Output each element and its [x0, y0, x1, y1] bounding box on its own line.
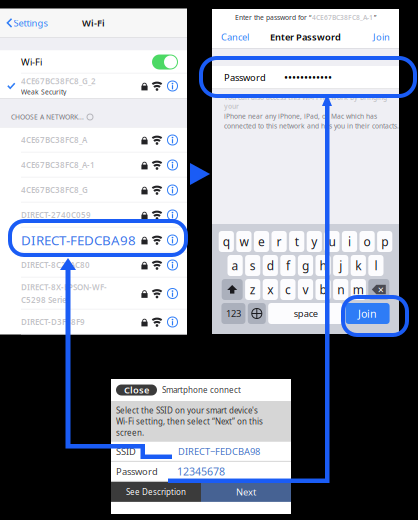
staticText: screen.	[116, 427, 144, 438]
staticText: Enter the password for “	[235, 13, 311, 22]
staticText: connected to this network and has you in…	[224, 122, 399, 130]
button[interactable]: b	[315, 279, 331, 300]
button[interactable]: Wi-Fi on	[152, 54, 178, 69]
staticText: 4CE67BC38FC8_G	[21, 185, 88, 195]
staticText: iPhone near any iPhone, iPad, or Mac whi…	[224, 112, 377, 121]
staticText: Wi-Fi	[82, 17, 105, 29]
button[interactable]: s	[245, 255, 260, 276]
button[interactable]: Join	[346, 303, 390, 324]
staticText: ”	[374, 13, 376, 22]
staticText: See Description	[126, 487, 186, 497]
staticText: c	[285, 281, 291, 297]
staticText: Join	[373, 31, 390, 43]
staticText: z	[250, 281, 256, 297]
button[interactable]: Settings	[0, 8, 47, 37]
staticText: CHOOSE A NETWORK...	[11, 113, 84, 121]
button[interactable]: DIRECT-2740C059	[0, 202, 187, 227]
button[interactable]: i	[342, 231, 357, 252]
staticText: Password	[224, 71, 266, 84]
staticText: Weak Security	[21, 87, 66, 96]
staticText: Password	[116, 465, 158, 478]
staticText: ••••••••••••	[284, 70, 332, 85]
staticText: l	[374, 257, 377, 273]
button[interactable]: h	[315, 255, 331, 276]
button[interactable]: a	[227, 255, 243, 276]
staticText: 4CE67BC38FC8_A-1	[312, 13, 373, 22]
staticText: You can also access this Wi-Fi network b…	[224, 93, 387, 111]
staticText: C5298 Serie	[21, 294, 67, 305]
button[interactable]: DIRECT-8X-EPSON-WF-	[0, 277, 187, 309]
button[interactable]: j	[333, 255, 348, 276]
staticText: Join	[358, 306, 377, 321]
button[interactable]: d	[263, 255, 278, 276]
button[interactable]: k	[351, 255, 366, 276]
staticText: DIRECT-FEDCBA98	[21, 231, 136, 249]
button[interactable]: e	[254, 231, 269, 252]
button[interactable]: Switch keyboard	[248, 303, 266, 324]
staticText: ×	[378, 282, 384, 297]
staticText: h	[320, 257, 327, 273]
staticText: a	[232, 257, 239, 273]
staticText: 4CE67BC38FC8_A	[21, 135, 87, 145]
staticText: t	[295, 233, 299, 249]
staticText: DIRECT-8C2FAC80	[21, 260, 90, 270]
staticText: d	[267, 257, 274, 273]
button[interactable]: u	[324, 231, 339, 252]
button[interactable]: c	[280, 279, 295, 300]
staticText: DIRECT-D3F38F9	[21, 317, 85, 327]
staticText: Wi-Fi setting, then select “Next” on thi…	[116, 416, 263, 427]
staticText: Next	[236, 486, 256, 498]
button[interactable]: 4CE67BC38FC8_G_2	[0, 73, 187, 98]
button[interactable]: o	[359, 231, 375, 252]
button[interactable]: See Description	[111, 482, 201, 502]
button[interactable]: m	[351, 279, 366, 300]
button[interactable]: l	[368, 255, 383, 276]
button[interactable]: space	[268, 303, 343, 324]
button[interactable]: z	[245, 279, 260, 300]
button[interactable]: 4CE67BC38FC8_G	[0, 177, 187, 202]
button[interactable]: 123	[221, 303, 245, 324]
staticText: x	[267, 281, 273, 297]
staticText: SSID	[116, 445, 136, 458]
staticText: Wi-Fi	[21, 56, 42, 68]
staticText: Close	[124, 384, 149, 396]
button[interactable]: p	[377, 231, 392, 252]
staticText: n	[337, 281, 344, 297]
staticText: Smartphone connect	[162, 385, 241, 395]
button[interactable]: t	[289, 231, 304, 252]
button[interactable]: g	[298, 255, 313, 276]
button[interactable]: q	[219, 231, 234, 252]
staticText: i	[348, 233, 351, 249]
staticText: e	[258, 233, 265, 249]
button[interactable]: y	[307, 231, 322, 252]
staticText: k	[355, 257, 361, 273]
button[interactable]: x	[263, 279, 278, 300]
button[interactable]: r	[271, 231, 287, 252]
staticText: y	[311, 233, 317, 249]
button[interactable]: Delete	[368, 279, 389, 300]
staticText: DIRECT-2740C059	[21, 210, 91, 220]
button[interactable]: Shift	[222, 279, 243, 300]
button[interactable]: Next	[201, 482, 291, 502]
button[interactable]: Join	[373, 26, 399, 48]
button[interactable]: n	[333, 279, 348, 300]
staticText: p	[381, 233, 388, 249]
button[interactable]: w	[236, 231, 251, 252]
staticText: g	[302, 257, 309, 273]
button[interactable]: 4CE67BC38FC8_A-1	[0, 152, 187, 177]
staticText: 123	[226, 307, 241, 320]
button[interactable]: Cancel	[212, 26, 249, 48]
staticText: 12345678	[177, 464, 225, 478]
button[interactable]: DIRECT-FEDCBA98	[0, 227, 187, 252]
button[interactable]: Close	[116, 384, 157, 395]
staticText: 4CE67BC38FC8_G_2	[21, 76, 96, 86]
staticText: Enter Password	[270, 31, 341, 43]
staticText: Select the SSID on your smart device's	[116, 405, 258, 416]
button[interactable]: v	[298, 279, 313, 300]
staticText: j	[339, 257, 342, 273]
button[interactable]: f	[280, 255, 295, 276]
button[interactable]: DIRECT-D3F38F9	[0, 309, 187, 334]
staticText: s	[250, 257, 256, 273]
button[interactable]: DIRECT-8C2FAC80	[0, 252, 187, 277]
button[interactable]: 4CE67BC38FC8_A	[0, 127, 187, 152]
